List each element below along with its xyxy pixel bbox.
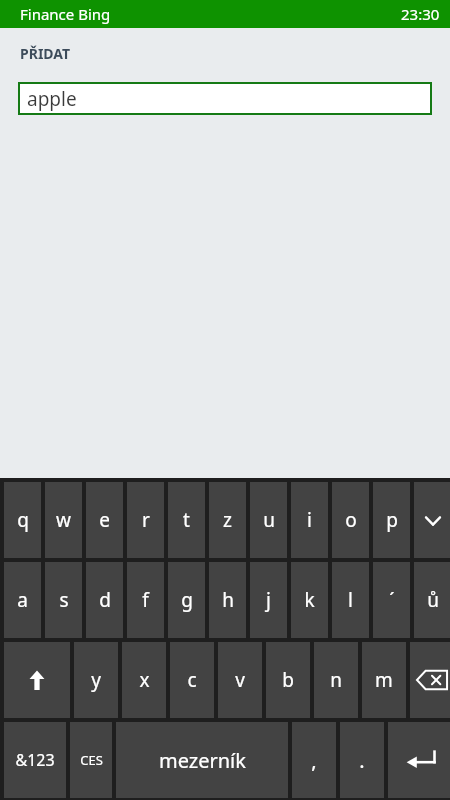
staticText: i bbox=[307, 507, 312, 533]
button[interactable]: ů bbox=[414, 562, 450, 638]
staticText: j bbox=[266, 587, 271, 613]
staticText: v bbox=[235, 667, 245, 693]
staticText: p bbox=[386, 507, 398, 533]
staticText: mezerník bbox=[159, 747, 246, 774]
staticText: f bbox=[142, 587, 149, 613]
staticText: 23:30 bbox=[401, 4, 440, 24]
staticText: n bbox=[330, 667, 342, 693]
staticText: b bbox=[282, 667, 294, 693]
button[interactable]: ´ bbox=[373, 562, 410, 638]
button[interactable]: q bbox=[4, 482, 41, 558]
staticText: d bbox=[99, 587, 111, 613]
button[interactable]: b bbox=[266, 642, 310, 718]
button[interactable]: k bbox=[291, 562, 328, 638]
button[interactable]: p bbox=[373, 482, 410, 558]
staticText: Finance Bing bbox=[20, 4, 111, 24]
staticText: CES bbox=[80, 751, 103, 769]
staticText: y bbox=[91, 667, 101, 693]
button[interactable]: c bbox=[170, 642, 214, 718]
staticText: . bbox=[359, 747, 365, 774]
button[interactable]: j bbox=[250, 562, 287, 638]
staticText: r bbox=[142, 507, 150, 533]
staticText: ´ bbox=[389, 587, 395, 613]
button[interactable]: CES bbox=[70, 722, 112, 798]
button[interactable]: i bbox=[291, 482, 328, 558]
button[interactable]: v bbox=[218, 642, 262, 718]
staticText: s bbox=[59, 587, 69, 613]
button[interactable]: u bbox=[250, 482, 287, 558]
button[interactable]: Shift bbox=[4, 642, 70, 718]
staticText: e bbox=[99, 507, 110, 533]
button[interactable]: x bbox=[122, 642, 166, 718]
staticText: c bbox=[187, 667, 197, 693]
button[interactable]: , bbox=[292, 722, 336, 798]
button[interactable]: Enter bbox=[388, 722, 450, 798]
button[interactable]: a bbox=[4, 562, 41, 638]
button[interactable]: h bbox=[209, 562, 246, 638]
staticText: w bbox=[56, 507, 71, 533]
button[interactable]: n bbox=[314, 642, 358, 718]
staticText: o bbox=[345, 507, 357, 533]
staticText: , bbox=[311, 747, 317, 774]
staticText: z bbox=[223, 507, 232, 533]
staticText: l bbox=[348, 587, 353, 613]
button[interactable]: . bbox=[340, 722, 384, 798]
button[interactable]: y bbox=[74, 642, 118, 718]
staticText: x bbox=[139, 667, 150, 693]
staticText: PŘIDAT bbox=[20, 44, 71, 63]
staticText: h bbox=[222, 587, 234, 613]
button[interactable]: Backspace bbox=[410, 642, 450, 718]
button[interactable]: s bbox=[45, 562, 82, 638]
staticText: g bbox=[181, 587, 193, 613]
button[interactable]: mezerník bbox=[116, 722, 288, 798]
button[interactable]: apple bbox=[18, 82, 432, 115]
staticText: u bbox=[263, 507, 275, 533]
button[interactable]: f bbox=[127, 562, 164, 638]
button[interactable]: &123 bbox=[4, 722, 66, 798]
button[interactable]: Hide keyboard bbox=[414, 482, 450, 558]
staticText: ů bbox=[427, 587, 439, 613]
button[interactable]: w bbox=[45, 482, 82, 558]
button[interactable]: r bbox=[127, 482, 164, 558]
staticText: a bbox=[17, 587, 28, 613]
button[interactable]: o bbox=[332, 482, 369, 558]
button[interactable]: e bbox=[86, 482, 123, 558]
staticText: t bbox=[183, 507, 190, 533]
button[interactable]: d bbox=[86, 562, 123, 638]
button[interactable]: t bbox=[168, 482, 205, 558]
button[interactable]: l bbox=[332, 562, 369, 638]
staticText: q bbox=[17, 507, 29, 533]
button[interactable]: m bbox=[362, 642, 406, 718]
staticText: &123 bbox=[15, 749, 55, 771]
staticText: m bbox=[375, 667, 393, 693]
button[interactable]: g bbox=[168, 562, 205, 638]
staticText: k bbox=[304, 587, 315, 613]
staticText: apple bbox=[27, 86, 77, 112]
button[interactable]: z bbox=[209, 482, 246, 558]
